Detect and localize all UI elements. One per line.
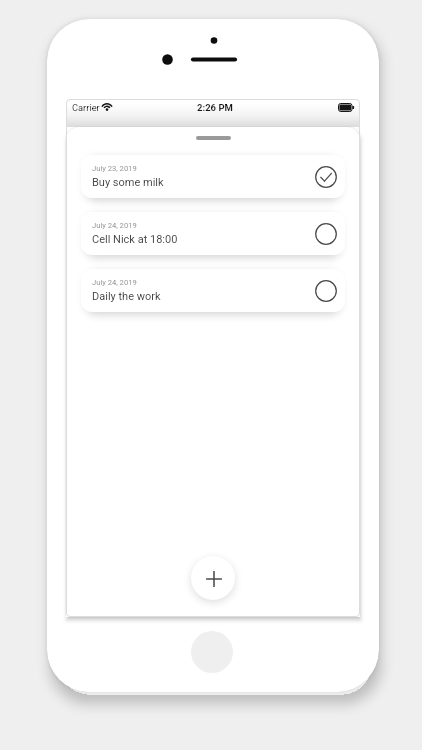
staticText: Buy some milk (92, 176, 164, 189)
staticText: 2:26 PM (197, 102, 233, 113)
staticText: July 24, 2019 (92, 221, 137, 230)
staticText: July 23, 2019 (92, 164, 137, 173)
staticText: Cell Nick at 18:00 (92, 233, 178, 246)
staticText: Daily the work (92, 290, 161, 303)
staticText: Carrier (72, 102, 100, 113)
button[interactable]: July 24, 2019 (81, 212, 345, 255)
button[interactable]: July 24, 2019 (81, 269, 345, 312)
button[interactable]: July 23, 2019 (81, 155, 345, 198)
button[interactable]: Add task (191, 556, 235, 600)
staticText: July 24, 2019 (92, 278, 137, 287)
